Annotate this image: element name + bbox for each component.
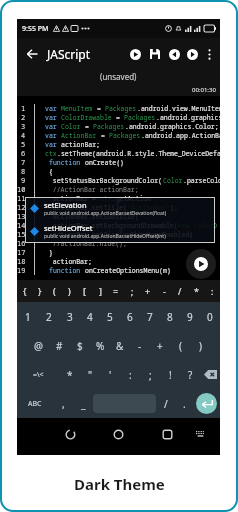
button[interactable]: Enter xyxy=(193,389,220,418)
button[interactable]: = xyxy=(108,280,124,302)
button[interactable]: { xyxy=(17,280,32,302)
staticText: ? xyxy=(188,368,193,382)
button[interactable]: * xyxy=(188,280,204,302)
staticText: , xyxy=(62,397,65,411)
button[interactable]: Recent apps xyxy=(157,424,177,444)
button[interactable]: 6 xyxy=(120,302,140,331)
button[interactable]: ( xyxy=(170,331,190,360)
staticText: & xyxy=(116,339,124,353)
staticText: 4 xyxy=(21,131,26,140)
staticText: //ActionBar actionBar; xyxy=(45,185,139,194)
button[interactable]: 4 xyxy=(80,302,100,331)
button[interactable]: 8 xyxy=(160,302,180,331)
staticText: Color xyxy=(163,176,183,185)
button[interactable]: . xyxy=(175,389,193,418)
button[interactable]: ABC xyxy=(17,389,52,418)
button[interactable]: $ xyxy=(70,331,90,360)
button[interactable]: 9 xyxy=(180,302,200,331)
button[interactable]: 5 xyxy=(100,302,120,331)
button[interactable]: ] xyxy=(92,280,108,302)
button[interactable]: " xyxy=(80,360,100,389)
staticText: new ColorD xyxy=(178,221,218,230)
staticText: onCreateOptionsMenu(m) xyxy=(85,266,171,275)
button[interactable]: setHideOffset xyxy=(25,220,215,243)
staticText: % xyxy=(96,339,105,353)
button[interactable]: Run xyxy=(126,45,144,63)
staticText: var xyxy=(45,131,61,140)
button[interactable]: 7 xyxy=(140,302,160,331)
staticText: Packages xyxy=(109,131,141,140)
button[interactable]: / xyxy=(157,389,175,418)
staticText: 1 xyxy=(25,310,31,324)
staticText: = xyxy=(97,131,109,140)
staticText: - xyxy=(138,339,142,353)
staticText: " xyxy=(88,368,93,382)
staticText: var xyxy=(45,140,61,149)
button[interactable]: [ xyxy=(77,280,92,302)
staticText: 3 xyxy=(21,122,26,131)
staticText: ( xyxy=(179,339,182,353)
button[interactable]: ) xyxy=(62,280,77,302)
staticText: onCreate() xyxy=(85,158,125,167)
button[interactable]: 3 xyxy=(59,302,80,331)
staticText: 8 xyxy=(21,167,26,176)
button[interactable]: _ xyxy=(75,389,92,418)
staticText: .setTheme(android.R.style.Theme_DeviceDe… xyxy=(57,149,220,158)
button[interactable]: More options xyxy=(201,46,217,62)
staticText: ' xyxy=(109,368,112,382)
staticText: ; xyxy=(149,368,152,382)
button[interactable]: ; xyxy=(124,280,140,302)
staticText: : xyxy=(129,368,132,382)
button[interactable]: * xyxy=(59,360,80,389)
button[interactable]: % xyxy=(90,331,110,360)
button[interactable]: / xyxy=(172,280,188,302)
staticText: 18 xyxy=(17,257,26,266)
staticText: 13 xyxy=(17,212,26,221)
staticText: var xyxy=(45,122,61,131)
button[interactable]: + xyxy=(140,280,156,302)
staticText: $ xyxy=(77,339,83,353)
button[interactable]: - xyxy=(130,331,150,360)
button[interactable]: setElevation xyxy=(25,197,215,220)
button[interactable]: Run script xyxy=(186,249,216,279)
button[interactable]: , xyxy=(52,389,75,418)
button[interactable]: Redo xyxy=(184,46,200,62)
button[interactable]: : xyxy=(204,280,220,302)
button[interactable]: Navigate up xyxy=(21,43,43,65)
button[interactable]: ( xyxy=(47,280,62,302)
staticText: JAScript xyxy=(47,46,91,62)
button[interactable]: } xyxy=(32,280,47,302)
button[interactable]: Back xyxy=(60,424,80,444)
button[interactable]: - xyxy=(156,280,172,302)
button[interactable]: 2 xyxy=(38,302,59,331)
button[interactable]: ) xyxy=(190,331,210,360)
button[interactable]: 1 xyxy=(17,302,38,331)
button[interactable]: ! xyxy=(160,360,180,389)
staticText: public void android.app.ActionBar.setEle… xyxy=(44,210,167,217)
button[interactable]: + xyxy=(150,331,170,360)
staticText: var xyxy=(45,104,61,113)
staticText: ctx xyxy=(100,194,112,203)
button[interactable]: Backspace xyxy=(200,360,220,389)
button[interactable]: & xyxy=(110,331,130,360)
staticText: actionBar.setDisplayShowHomeEnabled( xyxy=(45,230,194,239)
button[interactable]: Undo xyxy=(166,46,182,62)
button[interactable]: Save xyxy=(147,46,163,62)
button[interactable]: Hide keyboard xyxy=(192,426,208,442)
staticText: public void android.app.ActionBar.setHid… xyxy=(44,233,166,240)
button[interactable]: 0 xyxy=(200,302,220,331)
staticText: var xyxy=(45,113,61,122)
button[interactable]: : xyxy=(120,360,140,389)
button[interactable]: ? xyxy=(180,360,200,389)
button[interactable]: # xyxy=(49,331,70,360)
staticText: actionBar.setTitle( xyxy=(45,203,127,212)
staticText: .android.app.ActionBar; xyxy=(141,131,220,140)
button[interactable]: ' xyxy=(100,360,120,389)
button[interactable]: =\< xyxy=(17,360,59,389)
staticText: Color xyxy=(61,122,81,131)
button[interactable]: @ xyxy=(28,331,49,360)
button[interactable]: ; xyxy=(140,360,160,389)
button[interactable]: Home xyxy=(108,424,128,444)
